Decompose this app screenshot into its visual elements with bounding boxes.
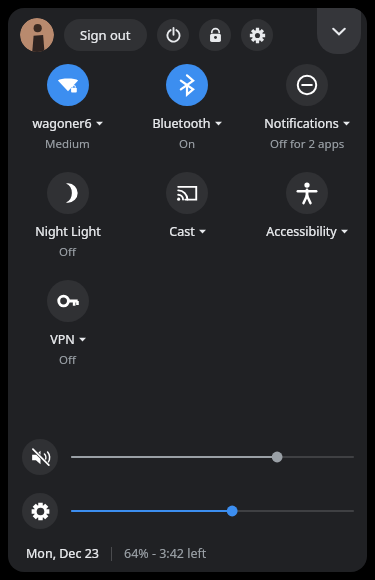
button[interactable]: Notifications [247,62,367,154]
button[interactable]: Volume level [72,443,353,471]
button[interactable]: Night Light [8,170,127,262]
button[interactable]: Volume [22,439,58,475]
staticText: Off [59,244,76,260]
other: Bluetooth [166,64,208,106]
button[interactable]: 64% - 3:42 left [124,545,207,562]
button[interactable]: Sign out [64,19,147,51]
staticText: Medium [45,136,90,152]
button[interactable]: Mon, Dec 23 [26,545,99,562]
staticText: Off for 2 apps [270,136,345,152]
button[interactable]: Power [157,19,189,51]
button[interactable]: Bluetooth [127,62,247,154]
other: Wi-Fi [47,64,89,106]
button[interactable]: Collapse [317,8,361,54]
button[interactable]: Lock [199,19,231,51]
staticText: wagoner6 [32,115,92,132]
other: Accessibility [286,172,328,214]
staticText: Accessibility [266,223,337,240]
button[interactable]: Account [20,18,54,52]
other: Cast [166,172,208,214]
button[interactable]: Wi-Fi [8,62,127,154]
staticText: Off [59,352,76,368]
other: Notifications [286,64,328,106]
button[interactable]: Settings [241,19,273,51]
staticText: Notifications [264,115,339,132]
other: Night Light [47,172,89,214]
staticText: Night Light [35,223,101,240]
staticText: Sign out [80,26,131,44]
staticText: VPN [50,331,75,348]
staticText: On [179,136,196,152]
staticText: Mon, Dec 23 [26,545,99,562]
button[interactable]: Brightness [22,493,58,529]
staticText: Cast [169,223,195,240]
button[interactable]: Accessibility [247,170,367,242]
button[interactable]: VPN [8,278,127,370]
staticText: Bluetooth [152,115,211,132]
staticText: 64% - 3:42 left [124,545,207,562]
button[interactable]: Brightness level [72,497,353,525]
other: VPN [47,280,89,322]
button[interactable]: Cast [127,170,247,242]
